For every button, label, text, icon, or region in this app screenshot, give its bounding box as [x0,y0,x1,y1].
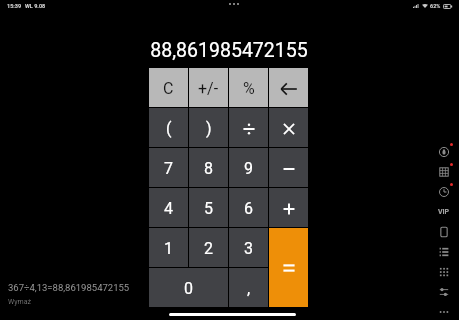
button[interactable]: 3 [229,228,268,267]
staticText: 88,861985472155 [150,39,308,62]
button[interactable]: Calendar [434,162,454,182]
button[interactable]: 1 [149,228,188,267]
staticText: WL 9.08 [25,3,46,9]
button[interactable]: 6 [229,188,268,227]
button[interactable]: 4 [149,188,188,227]
button[interactable]: , [229,268,268,307]
staticText: 367÷4,13=88,861985472155 [8,282,130,293]
button[interactable]: 8 [189,148,228,187]
button[interactable]: 9 [229,148,268,187]
button[interactable]: 367÷4,13=88,861985472155 [8,282,130,293]
staticText: 1 [164,239,173,258]
button[interactable]: Backspace [269,68,308,107]
button[interactable]: VIP [434,202,454,222]
button[interactable]: Phone [434,222,454,242]
button[interactable]: Divide [229,108,268,147]
staticText: , [247,279,251,298]
staticText: VIP [438,208,450,216]
button[interactable]: Multiply [269,108,308,147]
button[interactable]: Settings [434,282,454,302]
staticText: 5 [204,199,213,218]
staticText: % [243,79,255,98]
staticText: 2 [204,239,213,258]
staticText: 0 [184,279,193,298]
staticText: 4 [164,199,173,218]
button[interactable]: ( [149,108,188,147]
button[interactable]: Plus [269,188,308,227]
button[interactable]: 0 [149,268,228,307]
button[interactable]: List [434,242,454,262]
button[interactable]: +/- [189,68,228,107]
staticText: C [163,79,174,98]
button[interactable]: 7 [149,148,188,187]
button[interactable]: Equals [269,228,308,307]
button[interactable]: 2 [189,228,228,267]
button[interactable]: Clock [434,182,454,202]
staticText: +/- [198,79,219,98]
button[interactable]: ) [189,108,228,147]
staticText: 62% [430,3,441,9]
button[interactable]: Apps [434,262,454,282]
staticText: ) [206,119,212,138]
button[interactable]: Wymaż [8,298,31,306]
staticText: 7 [164,159,173,178]
button[interactable]: 5 [189,188,228,227]
button[interactable]: Minus [269,148,308,187]
staticText: 9 [244,159,253,178]
button[interactable]: Power saving [434,142,454,162]
staticText: 15:39 [7,3,22,9]
staticText: 3 [244,239,253,258]
button[interactable]: More options [434,302,454,320]
staticText: 8 [204,159,213,178]
staticText: 6 [244,199,253,218]
staticText: ( [166,119,172,138]
staticText: Wymaż [8,298,31,306]
button[interactable]: C [149,68,188,107]
button[interactable]: % [229,68,268,107]
